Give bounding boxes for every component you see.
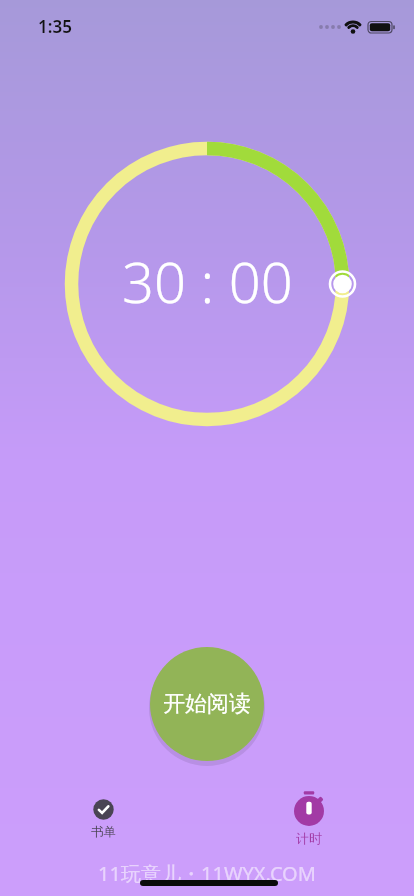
- staticText: 计时: [296, 830, 322, 846]
- staticText: 开始阅读: [163, 690, 251, 718]
- staticText: 书单: [91, 824, 116, 840]
- staticText: 30 : 00: [122, 243, 293, 319]
- button[interactable]: 书单: [63, 799, 143, 840]
- button[interactable]: 计时: [269, 788, 349, 846]
- staticText: 1:35: [38, 15, 72, 38]
- staticText: 11玩意儿・11WYX.COM: [0, 860, 414, 887]
- button[interactable]: 开始阅读: [150, 647, 264, 761]
